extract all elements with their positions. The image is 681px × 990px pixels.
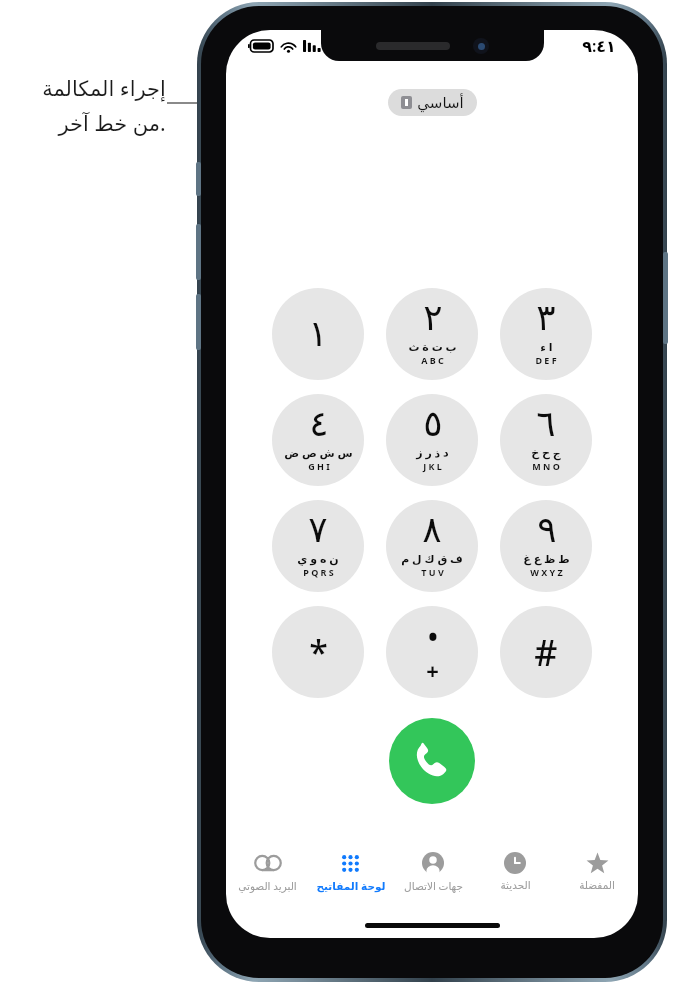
staticText: د ذ ر ز — [416, 445, 449, 460]
staticText: • — [428, 619, 438, 654]
button[interactable]: المفضلة — [556, 846, 638, 904]
staticText: # — [534, 628, 558, 677]
staticText: J K L — [423, 460, 442, 472]
button[interactable]: • — [386, 606, 478, 698]
button[interactable]: * — [272, 606, 364, 698]
staticText: البريد الصوتي — [238, 879, 297, 893]
staticText: W X Y Z — [530, 566, 563, 578]
button[interactable]: البريد الصوتي — [226, 846, 309, 904]
button[interactable]: ٧ — [272, 500, 364, 592]
staticText: ٢ — [423, 297, 443, 339]
staticText: M N O — [532, 460, 560, 472]
button[interactable]: ٥ — [386, 394, 478, 486]
button[interactable]: جهات الاتصال — [392, 846, 474, 904]
button[interactable]: الحديثة — [474, 846, 556, 904]
button[interactable]: ١ — [272, 288, 364, 380]
staticText: أساسي — [417, 94, 464, 111]
button[interactable]: أساسي — [388, 89, 477, 116]
staticText: ٩ — [537, 509, 557, 551]
staticText: ٧ — [308, 509, 328, 551]
staticText: من خط آخر. — [58, 109, 166, 138]
staticText: ج ح خ — [531, 445, 561, 460]
staticText: إجراء المكالمة — [42, 74, 166, 103]
staticText: ٤ — [309, 403, 329, 445]
staticText: ب ت ة ث — [408, 339, 457, 354]
staticText: ف ق ك ل م — [401, 551, 463, 566]
staticText: ١ — [308, 313, 328, 355]
staticText: ط ظ ع غ — [523, 551, 570, 566]
staticText: المفضلة — [579, 879, 615, 891]
staticText: لوحة المفاتيح — [316, 879, 386, 893]
button[interactable]: لوحة المفاتيح — [309, 846, 392, 904]
button[interactable]: ٦ — [500, 394, 592, 486]
staticText: س ش ص ض — [284, 445, 353, 460]
staticText: ا ء — [540, 339, 553, 354]
staticText: ٦ — [536, 403, 556, 445]
staticText: A B C — [421, 354, 444, 366]
staticText: D E F — [535, 354, 557, 366]
staticText: P Q R S — [303, 566, 334, 578]
button[interactable]: # — [500, 606, 592, 698]
staticText: ن ه و ي — [297, 551, 339, 566]
staticText: + — [426, 655, 439, 685]
button[interactable]: ٤ — [272, 394, 364, 486]
staticText: T U V — [421, 566, 444, 578]
button[interactable]: ٢ — [386, 288, 478, 380]
staticText: ٩:٤١ — [582, 35, 616, 57]
button[interactable]: ٣ — [500, 288, 592, 380]
staticText: ٨ — [422, 509, 442, 551]
staticText: جهات الاتصال — [404, 879, 463, 893]
button[interactable]: ٨ — [386, 500, 478, 592]
button[interactable]: ٩ — [500, 500, 592, 592]
staticText: ٣ — [536, 297, 556, 339]
staticText: G H I — [308, 460, 330, 472]
staticText: * — [309, 629, 328, 675]
staticText: ٥ — [423, 403, 443, 445]
button[interactable]: Call — [389, 718, 475, 804]
staticText: الحديثة — [500, 879, 531, 891]
